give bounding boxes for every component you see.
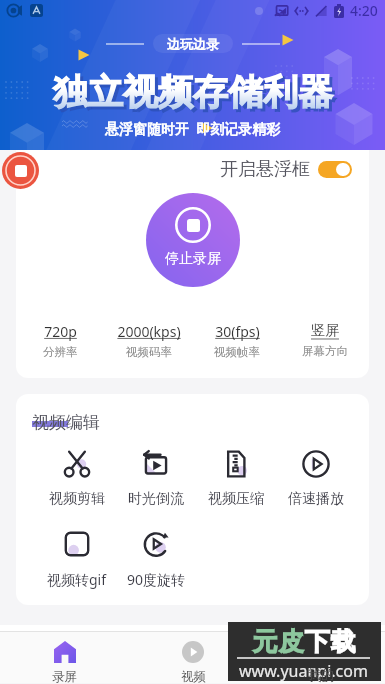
button[interactable]: 2000(kps) [105,322,193,359]
staticText: 倍速播放 [288,490,344,508]
button[interactable]: 视频压缩 [196,450,276,508]
button[interactable]: 视频剪辑 [37,450,116,508]
staticText: 边玩边录 [167,36,219,52]
staticText: 视频码率 [126,345,172,359]
staticText: 录屏 [52,669,77,683]
staticText: 我的 [309,669,334,683]
staticText: 视频 [181,669,206,683]
staticText: 4:20 [350,1,378,20]
button[interactable]: 停止录屏 [146,193,240,287]
button[interactable]: 视频 [129,641,257,683]
staticText: 开启悬浮框 [220,158,310,181]
staticText: 屏幕方向 [302,344,348,358]
button[interactable]: 竖屏 [281,322,369,358]
staticText: 独立视频存储利器 [53,70,333,114]
staticText: 90度旋转 [127,570,186,589]
button[interactable]: 视频转gif [37,530,116,589]
button[interactable]: 720p [16,322,105,359]
button[interactable]: 时光倒流 [116,450,196,508]
staticText: 悬浮窗随时开 即刻记录精彩 [105,119,281,138]
button[interactable]: Stop recording [2,152,39,189]
staticText: www.yuanpi.com [239,660,368,681]
staticText: 下载 [304,626,356,657]
button[interactable]: 我的 [257,641,385,683]
staticText: 2000(kps) [117,322,181,341]
staticText: 30(fps) [215,322,260,341]
staticText: 元皮 [252,626,304,657]
button[interactable]: 倍速播放 [276,450,356,508]
staticText: 视频转gif [47,570,107,589]
staticText: 视频编辑 [32,412,100,433]
staticText: 视频压缩 [208,490,264,508]
staticText: 720p [44,322,77,341]
staticText: 停止录屏 [165,250,221,268]
staticText: 视频剪辑 [49,490,105,508]
button[interactable]: 开启悬浮框 [220,156,352,183]
staticText: 竖屏 [311,322,339,340]
button[interactable]: 录屏 [0,641,129,683]
button[interactable]: 90度旋转 [116,530,196,589]
button[interactable]: 30(fps) [193,322,281,359]
staticText: 独立视频存储利器 [56,73,336,117]
staticText: 时光倒流 [128,490,184,508]
staticText: 我的 [308,666,334,682]
staticText: 分辨率 [43,345,78,359]
staticText: 视频帧率 [214,345,260,359]
